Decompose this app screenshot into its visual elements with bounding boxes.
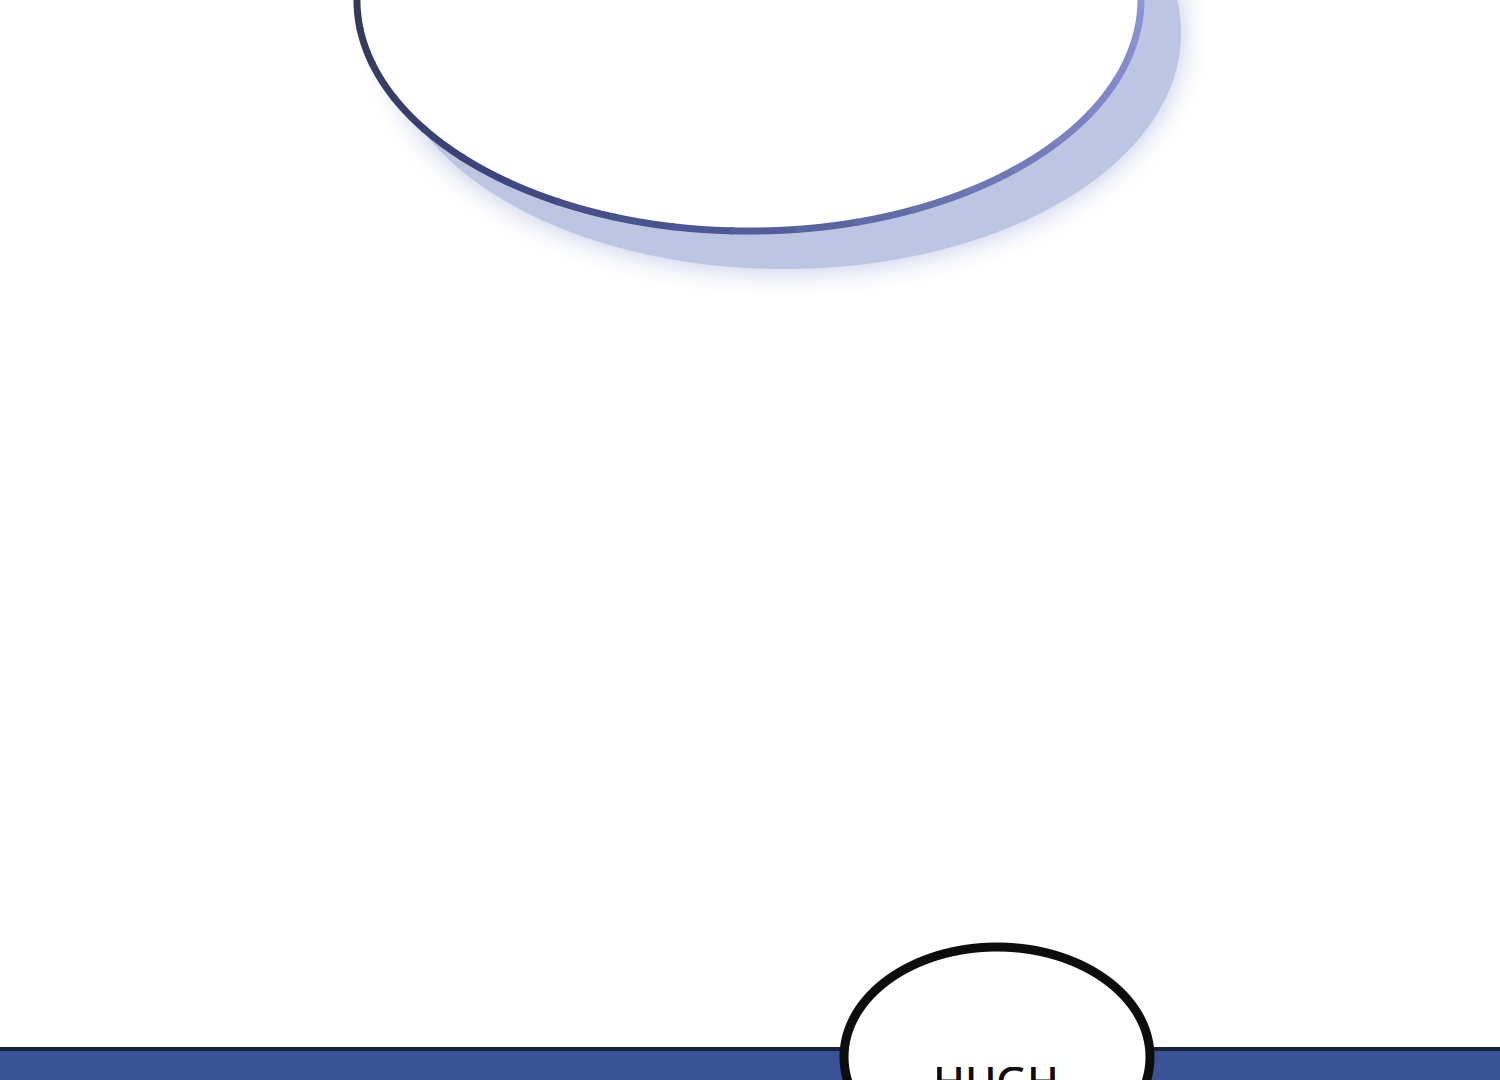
button[interactable]: Comic page, tap to show reader controls: [0, 0, 1500, 1080]
staticText: HUGH: [933, 1053, 1059, 1080]
